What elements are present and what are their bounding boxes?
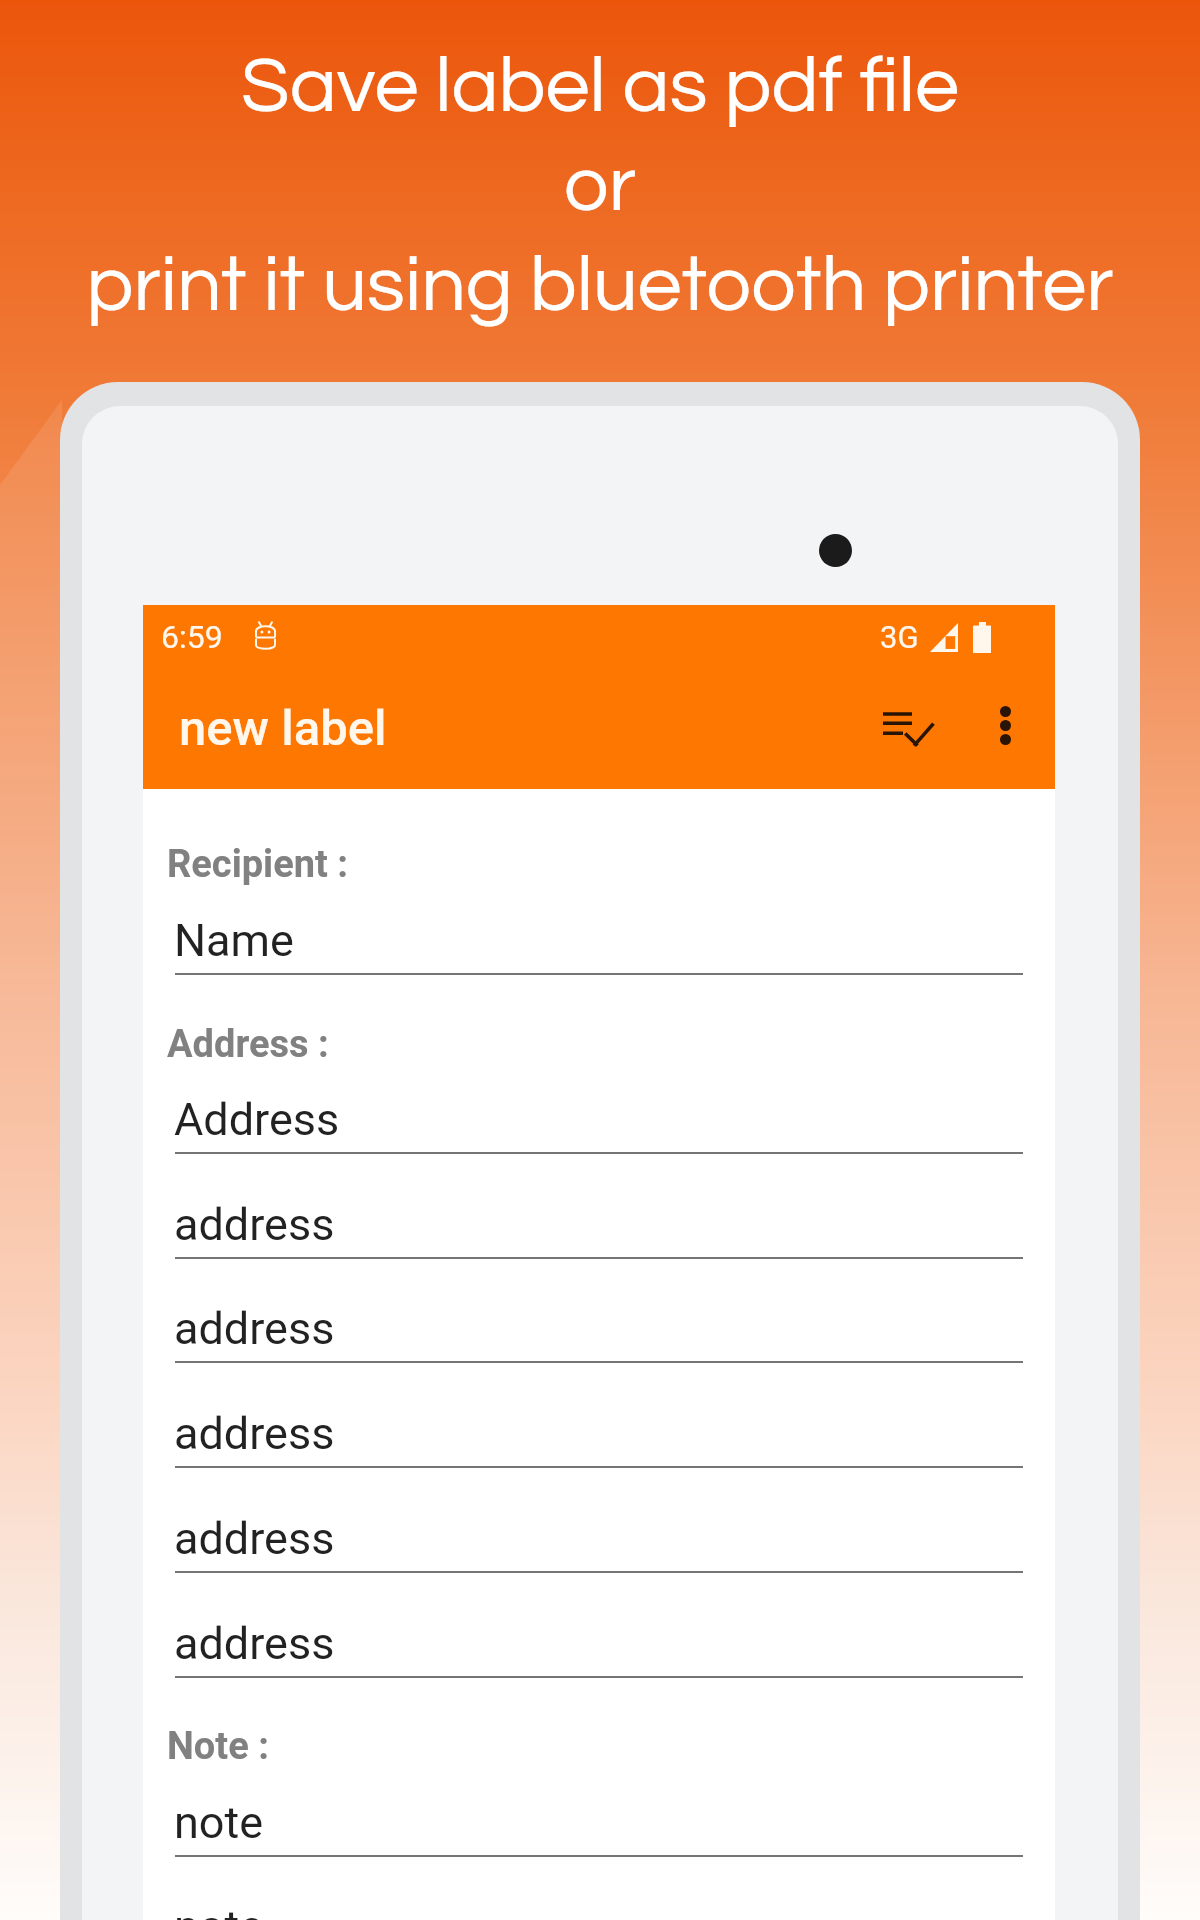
staticText: 3G: [880, 619, 919, 655]
staticText: new label: [179, 700, 387, 757]
button[interactable]: address: [143, 1277, 1055, 1363]
button[interactable]: Name: [143, 889, 1055, 975]
staticText: Address: [174, 1093, 340, 1146]
button[interactable]: note: [143, 1875, 1055, 1920]
staticText: 6:59: [161, 618, 223, 656]
staticText: Save label as pdf file or print it using…: [0, 46, 1200, 327]
staticText: address: [174, 1302, 335, 1355]
button[interactable]: note: [143, 1771, 1055, 1857]
staticText: address: [174, 1512, 335, 1565]
button[interactable]: More options: [963, 683, 1047, 767]
staticText: Recipient :: [167, 842, 349, 887]
staticText: note: [174, 1796, 264, 1849]
staticText: address: [174, 1617, 335, 1670]
staticText: note: [174, 1900, 264, 1920]
button[interactable]: Save label: [866, 686, 950, 770]
staticText: address: [174, 1198, 335, 1251]
button[interactable]: address: [143, 1592, 1055, 1678]
staticText: Note :: [167, 1724, 269, 1769]
button[interactable]: address: [143, 1173, 1055, 1259]
staticText: Address :: [167, 1022, 329, 1067]
staticText: Name: [174, 914, 294, 967]
button[interactable]: address: [143, 1382, 1055, 1468]
staticText: address: [174, 1407, 335, 1460]
button[interactable]: Address: [143, 1068, 1055, 1154]
button[interactable]: address: [143, 1487, 1055, 1573]
